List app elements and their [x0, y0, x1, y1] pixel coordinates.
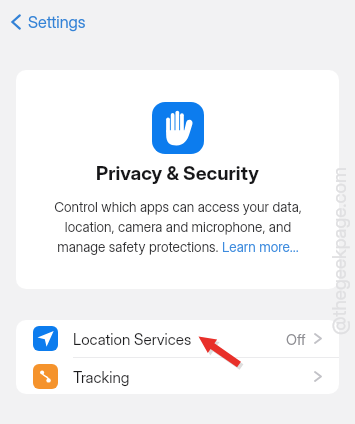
staticText: Settings: [28, 12, 86, 32]
staticText: Privacy & Security: [96, 161, 259, 184]
staticText: Control which apps can access your data,…: [42, 199, 314, 255]
staticText: Location Services: [73, 330, 192, 349]
button[interactable]: Learn more...: [222, 239, 302, 256]
staticText: @thegeekpage.com: [328, 167, 350, 335]
button[interactable]: Back to Settings: [8, 9, 89, 35]
staticText: Off: [286, 331, 306, 349]
button[interactable]: Tracking: [16, 358, 339, 394]
staticText: Tracking: [73, 368, 130, 387]
button[interactable]: Location Services: [16, 320, 339, 357]
